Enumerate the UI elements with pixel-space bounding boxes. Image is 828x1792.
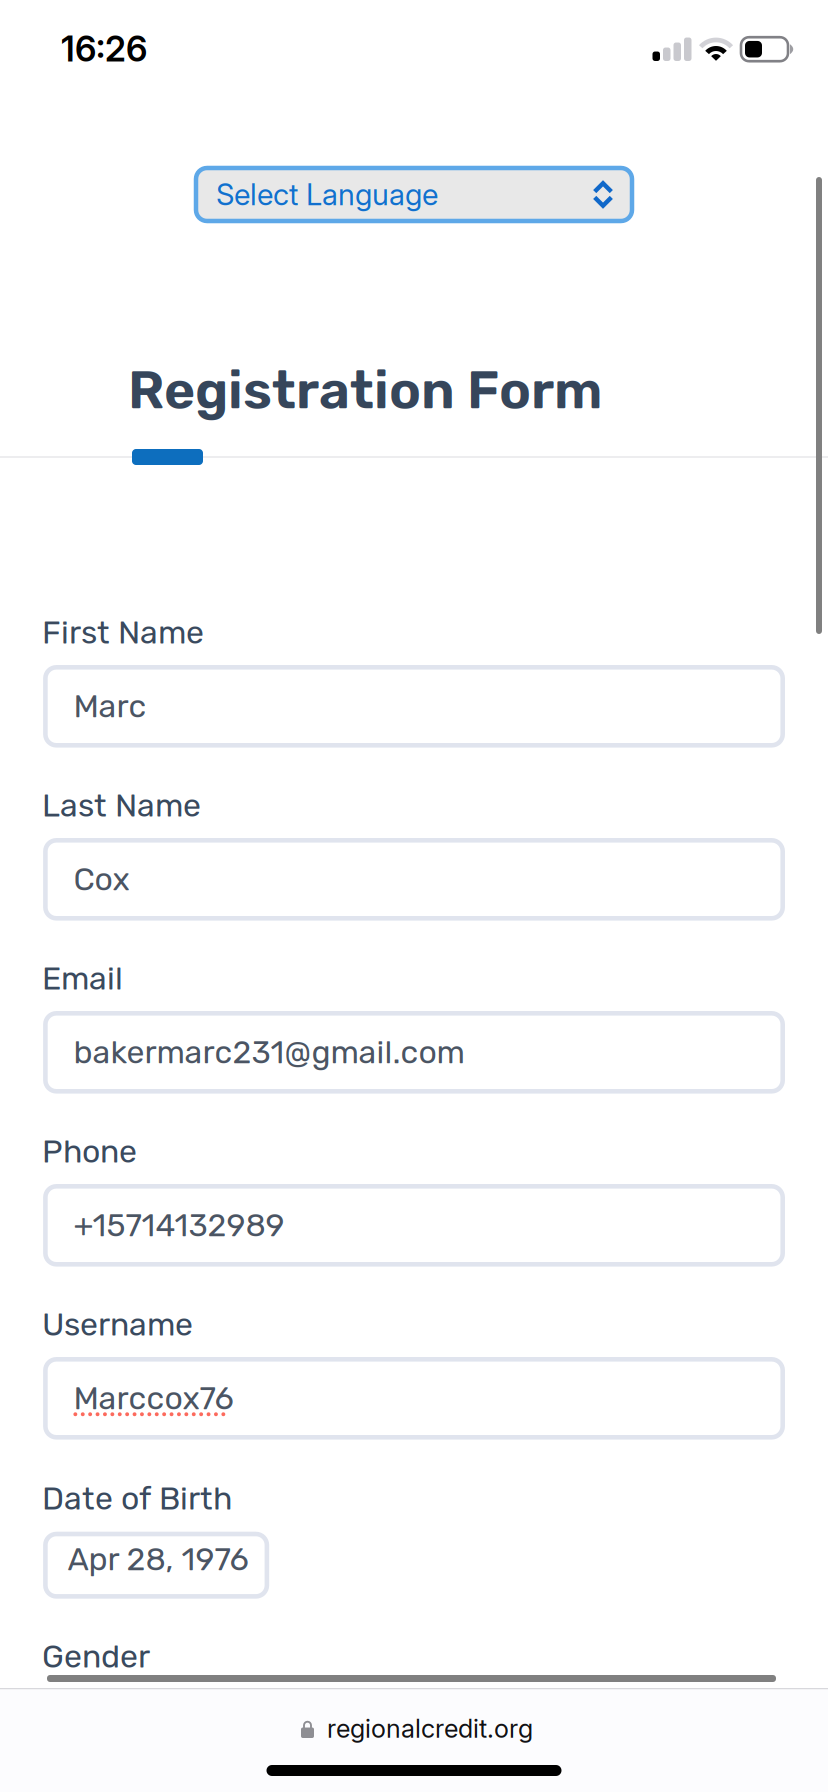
staticText: Marccox76 — [73, 1379, 233, 1417]
staticText: 16:26 — [61, 28, 147, 70]
staticText: Marc — [73, 687, 146, 725]
staticText: Date of Birth — [42, 1479, 232, 1517]
button[interactable]: regionalcredit.org — [301, 1711, 533, 1744]
staticText: Email — [42, 959, 123, 997]
staticText: Select Language — [216, 177, 438, 212]
staticText: regionalcredit.org — [327, 1713, 533, 1744]
staticText: Last Name — [42, 786, 201, 824]
staticText: Username — [42, 1305, 193, 1343]
staticText: First Name — [42, 613, 204, 651]
staticText: Phone — [42, 1132, 137, 1170]
staticText: Gender — [42, 1637, 150, 1675]
staticText: Apr 28, 1976 — [67, 1540, 248, 1578]
staticText: +15714132989 — [73, 1206, 284, 1244]
staticText: bakermarc231@gmail.com — [73, 1033, 464, 1071]
button[interactable]: Select Language — [196, 168, 632, 221]
staticText: Registration Form — [128, 358, 602, 422]
staticText: Cox — [73, 860, 129, 898]
